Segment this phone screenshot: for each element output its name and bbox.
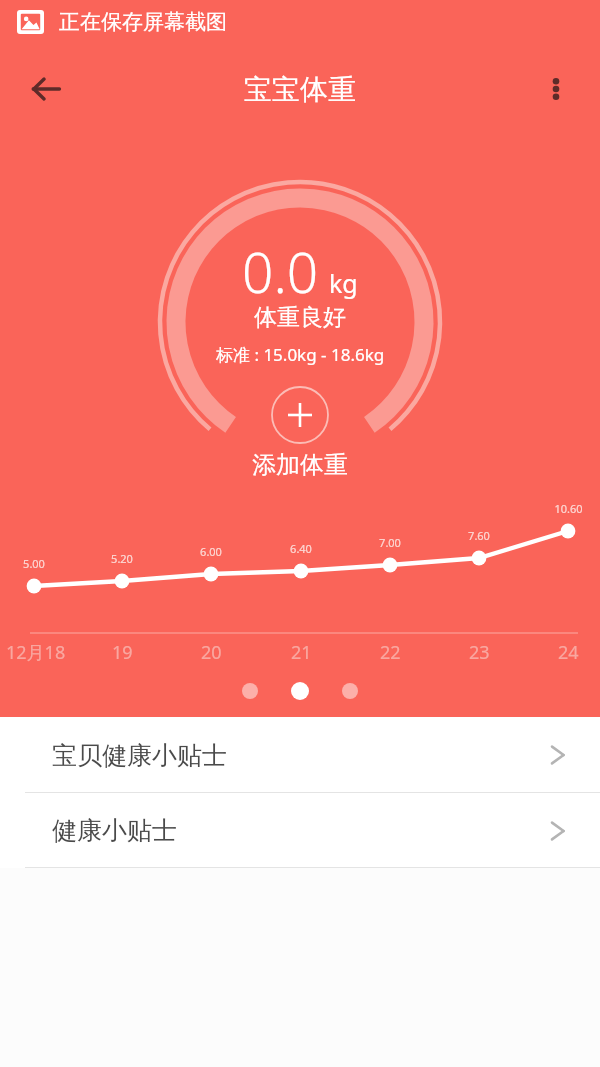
staticText: 标准 : 15.0kg - 18.6kg bbox=[216, 343, 385, 366]
staticText: 6.00 bbox=[200, 544, 222, 559]
button[interactable]: More options bbox=[532, 66, 580, 112]
staticText: 7.60 bbox=[468, 528, 490, 543]
staticText: 正在保存屏幕截图 bbox=[59, 9, 227, 35]
staticText: 5.00 bbox=[23, 556, 45, 571]
staticText: 20 bbox=[201, 640, 222, 665]
staticText: 6.40 bbox=[290, 541, 312, 556]
staticText: 宝宝体重 bbox=[244, 72, 356, 107]
staticText: 0.0 bbox=[242, 234, 319, 309]
button[interactable]: Add weight bbox=[270, 385, 330, 445]
staticText: kg bbox=[329, 266, 358, 300]
staticText: 21 bbox=[291, 640, 312, 665]
staticText: 12月18 bbox=[6, 640, 66, 665]
staticText: 19 bbox=[112, 640, 133, 665]
staticText: 宝贝健康小贴士 bbox=[52, 740, 227, 771]
staticText: 健康小贴士 bbox=[52, 815, 177, 846]
staticText: 体重良好 bbox=[254, 303, 346, 332]
staticText: 5.20 bbox=[111, 551, 133, 566]
staticText: 7.00 bbox=[379, 535, 401, 550]
button[interactable]: 健康小贴士 bbox=[0, 793, 600, 868]
staticText: 10.60 bbox=[554, 501, 583, 516]
button[interactable]: 宝贝健康小贴士 bbox=[0, 717, 600, 793]
staticText: 24 bbox=[558, 640, 579, 665]
staticText: 23 bbox=[469, 640, 490, 665]
staticText: 添加体重 bbox=[252, 450, 348, 480]
button[interactable]: Back bbox=[18, 66, 74, 112]
staticText: 22 bbox=[380, 640, 401, 665]
